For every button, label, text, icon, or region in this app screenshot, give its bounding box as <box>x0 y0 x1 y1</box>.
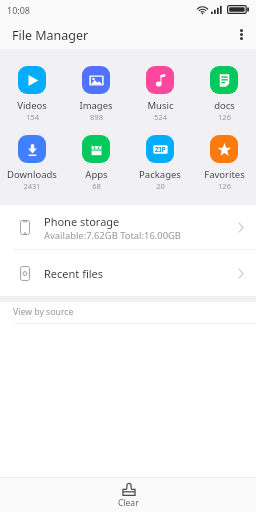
button[interactable]: Videos <box>0 66 64 122</box>
button[interactable]: Recent files <box>0 251 256 296</box>
staticText: 524 <box>154 112 167 122</box>
staticText: Packages <box>139 168 181 181</box>
staticText: Downloads <box>7 168 57 181</box>
button[interactable]: Phone storage <box>0 205 256 250</box>
staticText: 154 <box>26 112 39 122</box>
button[interactable]: More options <box>226 19 256 49</box>
button[interactable]: Favorites <box>192 135 256 191</box>
staticText: 898 <box>90 112 103 122</box>
staticText: 10:08 <box>7 4 31 16</box>
staticText: 20 <box>156 181 165 191</box>
button[interactable]: Downloads <box>0 135 64 191</box>
staticText: ZIP <box>155 145 166 154</box>
staticText: Images <box>79 99 113 112</box>
button[interactable]: Apps <box>64 135 128 191</box>
staticText: File Manager <box>12 27 89 44</box>
staticText: Favorites <box>204 168 245 181</box>
button[interactable]: Clear <box>118 482 139 509</box>
button[interactable]: Music <box>128 66 192 122</box>
staticText: Clear <box>118 497 139 509</box>
staticText: Recent files <box>44 266 104 281</box>
staticText: 126 <box>218 181 231 191</box>
staticText: Videos <box>17 99 47 112</box>
staticText: View by source <box>13 306 74 318</box>
staticText: 68 <box>92 181 101 191</box>
button[interactable]: ZIP <box>128 135 192 191</box>
staticText: Phone storage <box>44 214 120 229</box>
button[interactable]: docs <box>192 66 256 122</box>
staticText: docs <box>214 99 235 112</box>
staticText: 126 <box>218 112 231 122</box>
staticText: Apps <box>85 168 108 181</box>
button[interactable]: Images <box>64 66 128 122</box>
staticText: 2431 <box>23 181 41 191</box>
staticText: Music <box>147 99 174 112</box>
staticText: Available:7.62GB Total:16.00GB <box>44 229 181 242</box>
